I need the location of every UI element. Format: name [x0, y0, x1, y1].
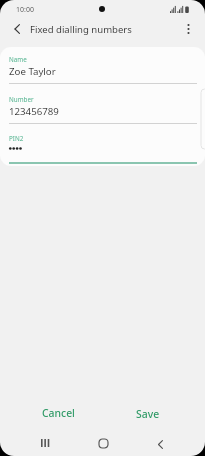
button[interactable]: Navigate up: [5, 17, 29, 41]
staticText: Save: [136, 407, 160, 421]
button[interactable]: Save: [104, 403, 192, 425]
button[interactable]: Back: [147, 431, 173, 456]
button[interactable]: Cancel: [14, 402, 102, 424]
button[interactable]: More options: [176, 17, 200, 41]
button[interactable]: Recent apps: [32, 430, 58, 456]
staticText: Zoe Taylor: [9, 65, 56, 78]
staticText: PIN2: [9, 134, 24, 143]
staticText: Number: [9, 95, 34, 104]
staticText: Name: [9, 55, 27, 64]
staticText: Cancel: [42, 406, 75, 420]
staticText: Fixed dialling numbers: [30, 23, 132, 36]
staticText: 10:00: [16, 5, 34, 15]
button[interactable]: Home: [90, 430, 116, 456]
staticText: 123456789: [9, 105, 59, 118]
